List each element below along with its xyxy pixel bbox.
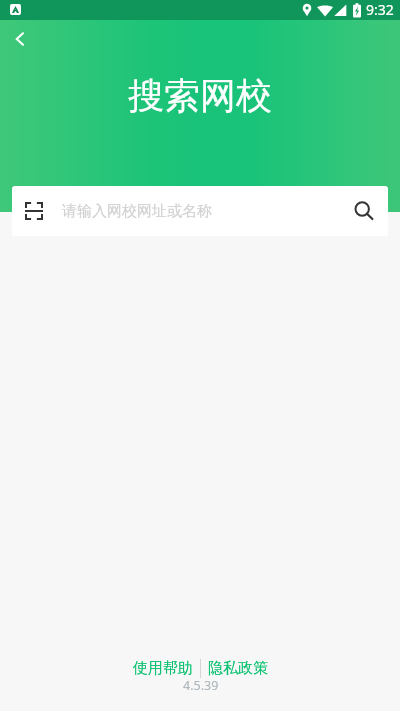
staticText: 搜索网校 [0, 73, 400, 118]
button[interactable]: Search [348, 195, 380, 227]
staticText: 使用帮助 [133, 659, 193, 678]
button[interactable]: 隐私政策 [201, 656, 275, 681]
button[interactable]: Back [5, 24, 37, 56]
staticText: 4.5.39 [183, 677, 219, 694]
staticText: 隐私政策 [208, 659, 268, 678]
staticText: 9:32 [366, 0, 394, 19]
staticText: 请输入网校网址或名称 [62, 202, 212, 221]
button[interactable]: Scan QR code [19, 196, 49, 226]
button[interactable]: 使用帮助 [126, 656, 200, 681]
button[interactable]: Scan QR code [12, 186, 388, 236]
